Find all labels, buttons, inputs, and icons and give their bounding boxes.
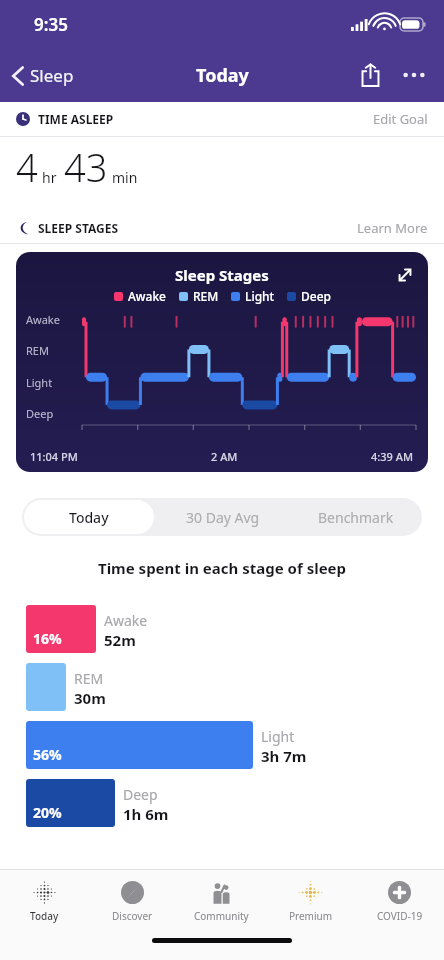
- staticText: 2 AM: [211, 449, 238, 464]
- staticText: Today: [30, 909, 59, 923]
- staticText: Deep: [301, 288, 331, 304]
- staticText: Today: [69, 508, 109, 527]
- staticText: 3h 7m: [261, 746, 307, 766]
- staticText: 4: [16, 141, 38, 193]
- button[interactable]: Learn More: [357, 219, 428, 237]
- staticText: Light: [26, 375, 53, 390]
- staticText: SLEEP STAGES: [38, 220, 119, 236]
- button[interactable]: Discover: [88, 870, 177, 932]
- staticText: 30 Day Avg: [186, 508, 260, 527]
- button[interactable]: Sleep Stages: [16, 252, 428, 472]
- staticText: Awake: [26, 312, 60, 327]
- staticText: Discover: [112, 909, 153, 923]
- button[interactable]: Community: [177, 870, 266, 932]
- button[interactable]: 30 Day Avg: [156, 498, 289, 536]
- staticText: 43: [64, 141, 108, 193]
- button[interactable]: Share: [348, 53, 392, 97]
- staticText: Light: [261, 727, 295, 746]
- button[interactable]: REM: [26, 660, 428, 714]
- button[interactable]: Premium: [266, 870, 355, 932]
- staticText: 9:35: [34, 13, 68, 36]
- staticText: 20%: [33, 803, 62, 822]
- staticText: hr: [42, 168, 57, 187]
- staticText: 11:04 PM: [30, 449, 78, 464]
- staticText: Sleep: [30, 64, 74, 87]
- staticText: COVID-19: [377, 909, 423, 923]
- staticText: Benchmark: [318, 508, 394, 527]
- staticText: Deep: [123, 785, 158, 804]
- staticText: Sleep Stages: [175, 265, 269, 285]
- button[interactable]: Edit Goal: [373, 110, 428, 128]
- button[interactable]: More options: [392, 53, 436, 97]
- staticText: Awake: [128, 288, 167, 304]
- button[interactable]: 56%: [26, 718, 428, 772]
- staticText: Awake: [104, 611, 148, 630]
- staticText: REM: [26, 343, 49, 358]
- button[interactable]: Today: [0, 870, 88, 932]
- button[interactable]: Expand chart: [388, 258, 422, 292]
- staticText: 4:39 AM: [371, 449, 414, 464]
- staticText: 30m: [74, 688, 106, 708]
- staticText: Time spent in each stage of sleep: [0, 558, 444, 578]
- staticText: TIME ASLEEP: [38, 111, 114, 127]
- button[interactable]: 16%: [26, 602, 428, 656]
- staticText: Community: [194, 909, 249, 923]
- staticText: Deep: [26, 406, 54, 421]
- button[interactable]: Sleep: [0, 58, 84, 93]
- staticText: 1h 6m: [123, 804, 169, 824]
- button[interactable]: Today: [24, 500, 154, 534]
- staticText: 52m: [104, 630, 136, 650]
- staticText: Premium: [289, 909, 333, 923]
- staticText: REM: [74, 669, 104, 688]
- staticText: min: [112, 168, 138, 187]
- button[interactable]: 20%: [26, 776, 428, 830]
- button[interactable]: Benchmark: [289, 498, 422, 536]
- button[interactable]: COVID-19: [355, 870, 444, 932]
- staticText: Today: [196, 63, 249, 88]
- staticText: REM: [193, 288, 219, 304]
- staticText: 16%: [33, 629, 62, 648]
- staticText: Light: [245, 288, 275, 304]
- staticText: 56%: [33, 745, 62, 764]
